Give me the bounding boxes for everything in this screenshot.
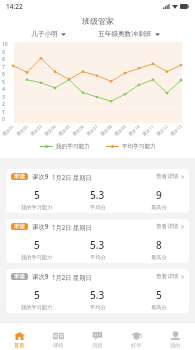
button[interactable]: 未读 xyxy=(6,169,189,213)
staticText: 查看详情 xyxy=(156,273,179,280)
staticText: 5.3 xyxy=(90,188,105,202)
staticText: 我的学习能力 xyxy=(21,254,53,261)
staticText: 8 xyxy=(156,238,162,252)
staticText: 五年级奥数冲刺班 xyxy=(98,30,152,38)
staticText: 我的 xyxy=(170,342,181,349)
button[interactable]: 儿子小明 xyxy=(29,28,68,40)
staticText: 14:22 xyxy=(6,2,23,11)
button[interactable]: 未读 xyxy=(6,219,189,263)
staticText: 5 xyxy=(34,188,40,202)
staticText: 6 xyxy=(2,71,5,78)
staticText: 查看详情 xyxy=(156,223,179,230)
staticText: 3 xyxy=(2,94,5,101)
staticText: 4 xyxy=(2,86,5,93)
staticText: 课程 xyxy=(53,342,64,349)
staticText: 5 xyxy=(34,238,40,252)
staticText: 5.3 xyxy=(90,238,105,252)
staticText: 0 xyxy=(2,116,5,123)
staticText: 10 xyxy=(2,41,8,48)
staticText: 5 xyxy=(2,79,5,86)
staticText: 平均分 xyxy=(90,254,106,261)
staticText: 消息 xyxy=(92,342,103,349)
button[interactable]: Profile xyxy=(156,323,195,350)
staticText: 最高分 xyxy=(151,204,167,211)
staticText: 5 xyxy=(34,288,40,302)
staticText: 平均分 xyxy=(90,304,106,311)
staticText: 课次9 xyxy=(32,222,49,231)
staticText: 平均学习能力 xyxy=(122,143,156,150)
staticText: 首页 xyxy=(14,342,25,349)
staticText: 最高分 xyxy=(151,254,167,261)
staticText: 我的学习能力 xyxy=(21,304,53,311)
staticText: 5.3 xyxy=(90,288,105,302)
button[interactable]: Reviews xyxy=(117,323,156,350)
staticText: 1月2日 星期日 xyxy=(52,273,92,281)
staticText: 8 xyxy=(2,56,5,63)
staticText: 未读 xyxy=(14,223,25,230)
staticText: 5 xyxy=(156,288,162,302)
staticText: 未读 xyxy=(14,173,25,180)
staticText: 1 xyxy=(2,109,5,116)
button[interactable]: Home xyxy=(0,323,39,350)
staticText: 班级管家 xyxy=(82,16,114,26)
staticText: 课次9 xyxy=(32,172,49,181)
button[interactable]: 五年级奥数冲刺班 xyxy=(96,28,162,40)
staticText: 未读 xyxy=(14,273,25,280)
staticText: 儿子小明 xyxy=(31,30,58,38)
staticText: 我的学习能力 xyxy=(56,143,90,150)
staticText: 查看详情 xyxy=(156,173,179,180)
staticText: 9 xyxy=(2,49,5,56)
staticText: 好评 xyxy=(131,342,142,349)
button[interactable]: Courses xyxy=(39,323,78,350)
staticText: 最高分 xyxy=(151,304,167,311)
staticText: 课次9 xyxy=(32,272,49,281)
staticText: 2 xyxy=(2,101,5,108)
staticText: 我的学习能力 xyxy=(21,204,53,211)
staticText: 平均分 xyxy=(90,204,106,211)
staticText: 7 xyxy=(2,64,5,71)
staticText: 9 xyxy=(156,188,162,202)
button[interactable]: 未读 xyxy=(6,269,189,313)
staticText: 1月2日 星期日 xyxy=(52,173,92,181)
staticText: 1月2日 星期日 xyxy=(52,223,92,231)
button[interactable]: Messages xyxy=(78,323,117,350)
